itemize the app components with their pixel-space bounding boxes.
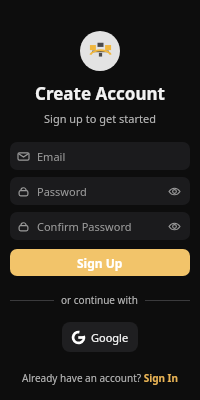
- button[interactable]: Already have an account? Sign In: [16, 368, 184, 388]
- staticText: Create Account: [35, 82, 165, 105]
- button[interactable]: Google: [62, 322, 138, 352]
- button[interactable]: Email: [10, 142, 190, 170]
- staticText: Sign Up: [77, 255, 123, 271]
- staticText: or continue with: [61, 293, 138, 307]
- staticText: Google: [91, 330, 129, 345]
- button[interactable]: Sign Up: [10, 249, 190, 276]
- button[interactable]: Toggle password visibility: [166, 218, 182, 234]
- staticText: Email: [37, 149, 182, 164]
- button[interactable]: Password: [10, 177, 190, 205]
- staticText: Already have an account? Sign In: [22, 371, 178, 385]
- button[interactable]: Toggle password visibility: [166, 183, 182, 199]
- staticText: Password: [37, 184, 166, 199]
- staticText: Confirm Password: [37, 219, 166, 234]
- staticText: Sign up to get started: [44, 111, 156, 126]
- button[interactable]: Confirm Password: [10, 212, 190, 240]
